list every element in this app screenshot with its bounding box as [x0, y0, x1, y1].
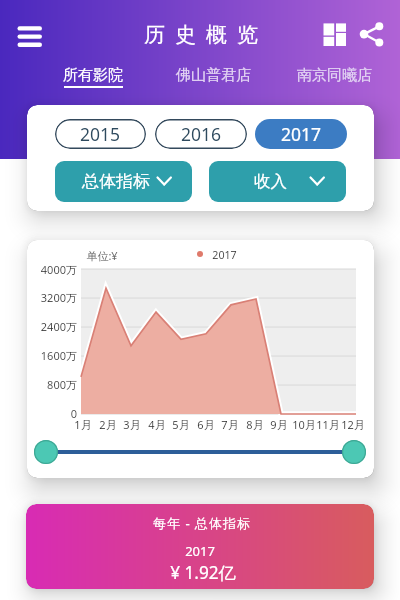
staticText: 每年 - 总体指标: [153, 514, 251, 532]
button[interactable]: 2016: [155, 119, 247, 149]
staticText: 2015: [80, 122, 121, 146]
staticText: 0: [70, 406, 77, 421]
button[interactable]: 每年 - 总体指标: [26, 504, 374, 589]
staticText: 3200万: [40, 290, 77, 305]
button[interactable]: 2015: [55, 119, 146, 149]
button[interactable]: 总体指标: [55, 161, 192, 202]
staticText: 南京同曦店: [297, 66, 372, 85]
staticText: 单位:¥: [86, 248, 118, 262]
staticText: 10月: [292, 417, 316, 431]
staticText: 8月: [246, 417, 264, 431]
staticText: ¥ 1.92亿: [170, 561, 236, 584]
staticText: 7月: [221, 417, 239, 431]
staticText: 佛山普君店: [176, 66, 251, 85]
button[interactable]: Month range slider: [30, 435, 370, 469]
staticText: 2017: [281, 122, 322, 146]
button[interactable]: 南京同曦店: [282, 62, 386, 94]
staticText: 1月: [74, 417, 92, 431]
staticText: 6月: [197, 417, 215, 431]
button[interactable]: 所有影院: [41, 62, 145, 94]
staticText: 2017: [212, 248, 237, 262]
staticText: 800万: [47, 377, 77, 392]
staticText: 1600万: [40, 348, 77, 363]
button[interactable]: 佛山普君店: [161, 62, 265, 94]
staticText: 9月: [270, 417, 288, 431]
button[interactable]: 收入: [209, 161, 346, 202]
staticText: 2016: [181, 122, 222, 146]
button[interactable]: Menu: [10, 20, 50, 52]
staticText: 所有影院: [63, 66, 123, 85]
button[interactable]: Dashboard: [318, 18, 351, 52]
button[interactable]: Share: [355, 18, 388, 52]
staticText: 4月: [148, 417, 166, 431]
staticText: 历史概览: [139, 22, 263, 48]
staticText: 2月: [99, 417, 117, 431]
staticText: 11月: [316, 417, 340, 431]
button[interactable]: 2017: [255, 119, 347, 149]
staticText: 2017: [185, 542, 215, 560]
staticText: 收入: [254, 171, 287, 192]
staticText: 12月: [341, 417, 365, 431]
staticText: 总体指标: [82, 171, 150, 192]
staticText: 2400万: [40, 319, 77, 334]
staticText: 3月: [123, 417, 141, 431]
staticText: 5月: [172, 417, 190, 431]
staticText: 4000万: [40, 262, 77, 277]
